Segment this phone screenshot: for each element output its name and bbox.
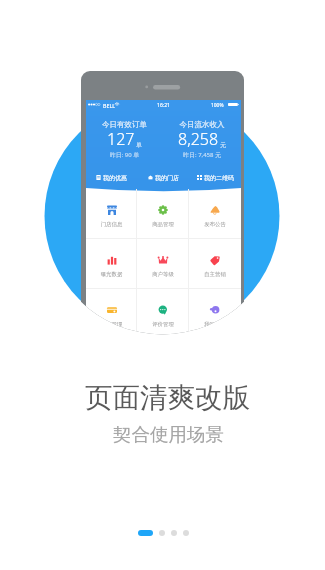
button[interactable]: Page 3 bbox=[171, 530, 177, 536]
staticText: BELL bbox=[103, 102, 115, 109]
staticText: 127 bbox=[107, 128, 135, 150]
button[interactable]: 商户等级 bbox=[137, 239, 189, 288]
staticText: 今日有效订单 bbox=[86, 120, 163, 129]
button[interactable]: 发布公告 bbox=[189, 189, 241, 238]
staticText: 单 bbox=[136, 141, 142, 149]
button[interactable]: Page 1 bbox=[138, 530, 153, 536]
button[interactable]: 今日有效订单 bbox=[86, 100, 163, 162]
button[interactable]: 门店信息 bbox=[86, 189, 137, 238]
button[interactable]: 曝光数据 bbox=[86, 239, 137, 288]
staticText: 评价管理 bbox=[137, 321, 189, 328]
staticText: 8,258 bbox=[178, 128, 219, 150]
staticText: 我的二维码 bbox=[204, 174, 234, 182]
staticText: 商户等级 bbox=[137, 271, 189, 278]
staticText: 我的优惠 bbox=[103, 174, 127, 182]
staticText: 元 bbox=[220, 141, 226, 149]
staticText: 今日流水收入 bbox=[163, 120, 241, 129]
button[interactable]: 商品管理 bbox=[137, 189, 189, 238]
button[interactable]: Page 4 bbox=[183, 530, 189, 536]
staticText: 100% bbox=[211, 102, 224, 109]
staticText: 商品管理 bbox=[137, 221, 189, 228]
button[interactable]: 今日流水收入 bbox=[163, 100, 241, 162]
staticText: 昨日: 7,458 元 bbox=[163, 151, 241, 159]
staticText: 门店信息 bbox=[86, 221, 137, 228]
staticText: 16:21 bbox=[157, 102, 171, 109]
staticText: 我的门店 bbox=[155, 174, 179, 182]
staticText: 曝光数据 bbox=[86, 271, 137, 278]
button[interactable]: 评价管理 bbox=[137, 289, 189, 338]
button[interactable]: Page 2 bbox=[159, 530, 165, 536]
button[interactable]: 我的优惠 bbox=[86, 172, 137, 183]
staticText: 契合使用场景 bbox=[6, 423, 325, 446]
staticText: 会员管理 bbox=[86, 321, 137, 328]
button[interactable]: 自主营销 bbox=[189, 239, 241, 288]
button[interactable]: 会员管理 bbox=[86, 289, 137, 338]
button[interactable]: 我的客服 bbox=[189, 289, 241, 338]
staticText: 昨日: 90 单 bbox=[86, 151, 163, 159]
staticText: 发布公告 bbox=[189, 221, 241, 228]
staticText: 自主营销 bbox=[189, 271, 241, 278]
staticText: 页面清爽改版 bbox=[5, 381, 325, 416]
button[interactable]: 我的门店 bbox=[137, 172, 189, 183]
button[interactable]: 我的二维码 bbox=[189, 172, 241, 183]
staticText: 我的客服 bbox=[189, 321, 241, 328]
